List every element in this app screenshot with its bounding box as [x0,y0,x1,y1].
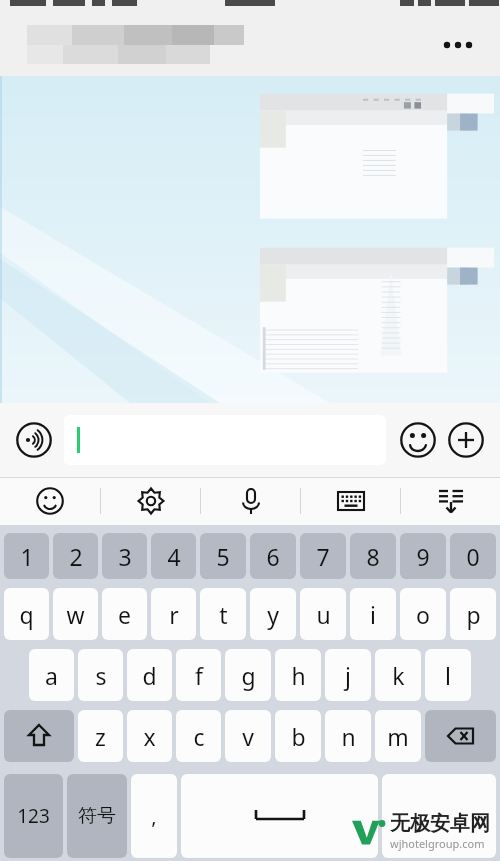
button[interactable]: x [127,710,172,762]
button[interactable]: Enter [382,774,496,858]
staticText: 无极安卓网 [390,811,490,836]
button[interactable]: v [225,710,271,762]
button[interactable]: h [275,649,321,701]
button[interactable]: o [400,588,446,640]
staticText: wjhotelgroup.com [390,836,485,851]
staticText: t [219,599,228,630]
button[interactable]: Emoticons [0,477,100,525]
button[interactable]: Symbols [67,774,127,858]
button[interactable]: n [325,710,371,762]
button[interactable]: Keyboard [301,477,400,525]
staticText: 2 [69,541,83,572]
staticText: o [416,599,430,630]
button[interactable]: e [102,588,147,640]
staticText: h [291,660,306,691]
button[interactable]: 5 [200,533,246,579]
button[interactable]: 6 [250,533,296,579]
button[interactable]: Voice input [10,416,58,464]
staticText: m [387,721,409,752]
staticText: 6 [266,541,280,572]
button[interactable]: y [250,588,296,640]
staticText: u [316,599,331,630]
button[interactable]: 1 [4,533,49,579]
button[interactable]: 9 [400,533,446,579]
button[interactable]: , [131,774,177,858]
staticText: b [291,721,306,752]
button[interactable]: l [425,649,471,701]
button[interactable]: Hide keyboard [401,477,500,525]
button[interactable]: g [225,649,271,701]
staticText: l [445,660,451,691]
button[interactable]: Space [181,774,378,858]
button[interactable]: i [350,588,396,640]
button[interactable]: z [78,710,123,762]
button[interactable]: Numbers [4,774,63,858]
button[interactable]: 8 [350,533,396,579]
button[interactable]: 7 [300,533,346,579]
staticText: z [95,721,106,752]
button[interactable]: m [375,710,421,762]
staticText: 5 [216,541,230,572]
staticText: x [143,721,156,752]
button[interactable]: j [325,649,371,701]
staticText: 8 [366,541,380,572]
button[interactable]: w [53,588,98,640]
staticText: w [66,599,85,630]
staticText: q [19,599,34,630]
staticText: c [193,721,205,752]
staticText: k [392,660,405,691]
staticText: , [151,803,157,830]
staticText: 3 [118,541,132,572]
button[interactable]: Backspace [425,710,496,762]
staticText: a [45,660,58,691]
button[interactable]: a [29,649,74,701]
button[interactable]: 3 [102,533,147,579]
staticText: 123 [17,803,50,829]
button[interactable]: d [127,649,172,701]
staticText: r [169,599,179,630]
button[interactable]: Voice input [201,477,300,525]
staticText: p [466,599,481,630]
staticText: v [242,721,254,752]
staticText: s [95,660,107,691]
staticText: n [341,721,356,752]
button[interactable]: c [176,710,221,762]
button[interactable]: b [275,710,321,762]
button[interactable] [260,242,494,384]
staticText: 0 [466,541,480,572]
button[interactable]: t [200,588,246,640]
staticText: g [241,660,256,691]
button[interactable]: r [151,588,196,640]
staticText: 4 [167,541,181,572]
button[interactable]: Settings [101,477,200,525]
staticText: 1 [20,541,34,572]
button[interactable]: Emoji [394,416,442,464]
staticText: j [345,660,351,691]
staticText: 7 [316,541,330,572]
button[interactable]: 2 [53,533,98,579]
button[interactable]: 0 [450,533,496,579]
staticText: i [370,599,376,630]
button[interactable]: More options [432,19,484,71]
staticText: d [142,660,157,691]
button[interactable] [64,415,386,465]
button[interactable]: Shift [4,710,74,762]
button[interactable]: q [4,588,49,640]
staticText: y [267,599,279,630]
button[interactable]: 4 [151,533,196,579]
button[interactable]: k [375,649,421,701]
staticText: f [195,660,203,691]
staticText: 符号 [78,804,116,828]
button[interactable] [260,88,494,230]
button[interactable]: s [78,649,123,701]
staticText: e [118,599,131,630]
button[interactable]: u [300,588,346,640]
button[interactable]: f [176,649,221,701]
staticText: 9 [416,541,430,572]
button[interactable]: p [450,588,496,640]
button[interactable]: More functions [442,416,490,464]
